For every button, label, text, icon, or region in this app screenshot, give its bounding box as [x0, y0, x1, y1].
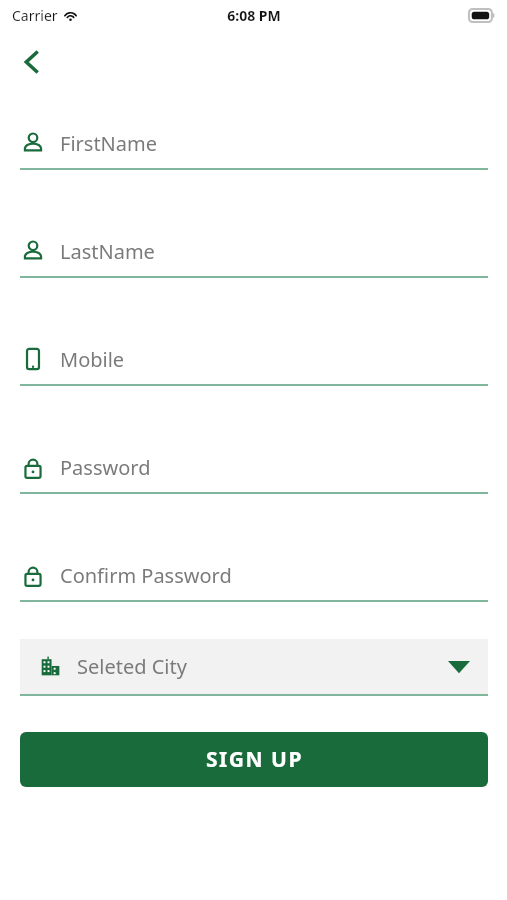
staticText: Carrier	[12, 6, 58, 25]
button[interactable]: LastName	[0, 226, 507, 278]
staticText: Password	[60, 454, 151, 481]
button[interactable]: Seleted City	[0, 639, 507, 696]
staticText: FirstName	[60, 130, 157, 157]
button[interactable]: Password	[0, 442, 507, 494]
staticText: LastName	[60, 238, 155, 265]
staticText: 6:08 PM	[227, 6, 281, 25]
button[interactable]: FirstName	[0, 118, 507, 170]
button[interactable]: Confirm Password	[0, 550, 507, 602]
staticText: Mobile	[60, 346, 125, 373]
staticText: SIGN UP	[206, 745, 303, 774]
button[interactable]: SIGN UP	[20, 732, 488, 787]
staticText: Seleted City	[77, 653, 187, 680]
button[interactable]: Back	[10, 40, 54, 84]
button[interactable]: Mobile	[0, 334, 507, 386]
staticText: Confirm Password	[60, 562, 232, 589]
